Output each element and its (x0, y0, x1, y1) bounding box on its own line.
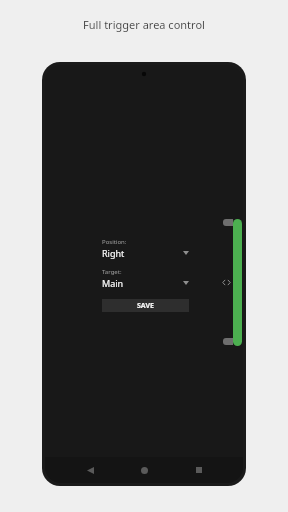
staticText: Full trigger area control (83, 17, 205, 32)
button[interactable]: Back (80, 460, 100, 480)
button[interactable]: Trigger area (213, 217, 243, 347)
staticText: Right (102, 247, 183, 259)
button[interactable]: Target: (102, 268, 189, 289)
button[interactable]: Position: (102, 238, 189, 259)
staticText: Target: (102, 268, 122, 276)
button[interactable]: SAVE (102, 299, 189, 312)
button[interactable]: Home (134, 460, 154, 480)
button[interactable]: Recents (189, 460, 209, 480)
staticText: SAVE (137, 301, 154, 311)
staticText: Main (102, 277, 183, 289)
staticText: Position: (102, 238, 127, 246)
